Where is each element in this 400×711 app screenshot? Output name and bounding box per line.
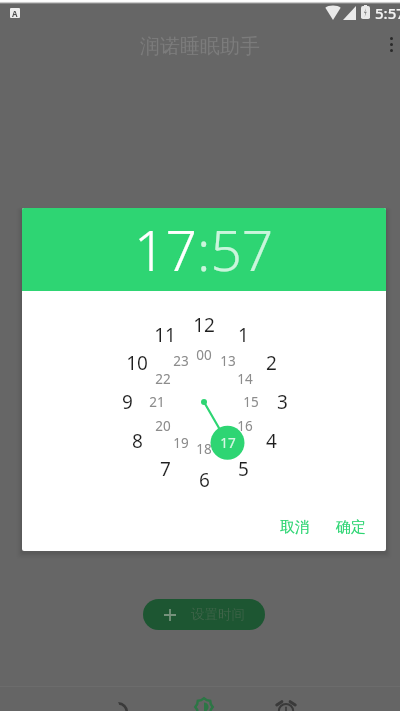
button[interactable]: Alarm	[246, 687, 326, 711]
staticText: 11	[154, 322, 176, 348]
staticText: 8	[132, 428, 143, 454]
staticText: 润诺睡眠助手	[140, 34, 260, 59]
staticText: 5	[238, 456, 249, 482]
staticText: 10	[126, 350, 148, 376]
button[interactable]: 取消	[270, 512, 320, 543]
staticText: 7	[160, 456, 171, 482]
staticText: 设置时间	[191, 606, 245, 623]
staticText: 3	[277, 389, 288, 415]
staticText: 13	[220, 352, 236, 370]
staticText: 15	[243, 393, 259, 411]
staticText: 取消	[280, 518, 310, 537]
staticText: 9	[122, 389, 133, 415]
button[interactable]: More options	[372, 26, 400, 62]
staticText: 2	[266, 350, 277, 376]
staticText: A	[12, 8, 18, 18]
staticText: 20	[155, 417, 171, 435]
button[interactable]: Sleep	[82, 687, 162, 711]
staticText: 12	[193, 312, 215, 338]
staticText: 17	[134, 212, 197, 287]
staticText: 22	[155, 370, 171, 388]
staticText: 5:57	[375, 3, 400, 23]
staticText: 确定	[336, 518, 366, 537]
staticText: 4	[266, 428, 277, 454]
button[interactable]: 设置时间	[143, 599, 265, 630]
staticText: 14	[237, 370, 253, 388]
staticText: 16	[237, 417, 253, 435]
button[interactable]: 确定	[326, 512, 376, 543]
button[interactable]: Brightness	[164, 687, 244, 711]
staticText: 21	[149, 393, 165, 411]
staticText: 18	[196, 440, 212, 458]
staticText: :57	[197, 212, 274, 287]
staticText: 00	[196, 346, 212, 364]
staticText: 23	[173, 352, 189, 370]
staticText: 19	[173, 434, 189, 452]
staticText: 17	[220, 434, 236, 452]
staticText: 6	[199, 467, 210, 493]
staticText: 1	[238, 322, 249, 348]
